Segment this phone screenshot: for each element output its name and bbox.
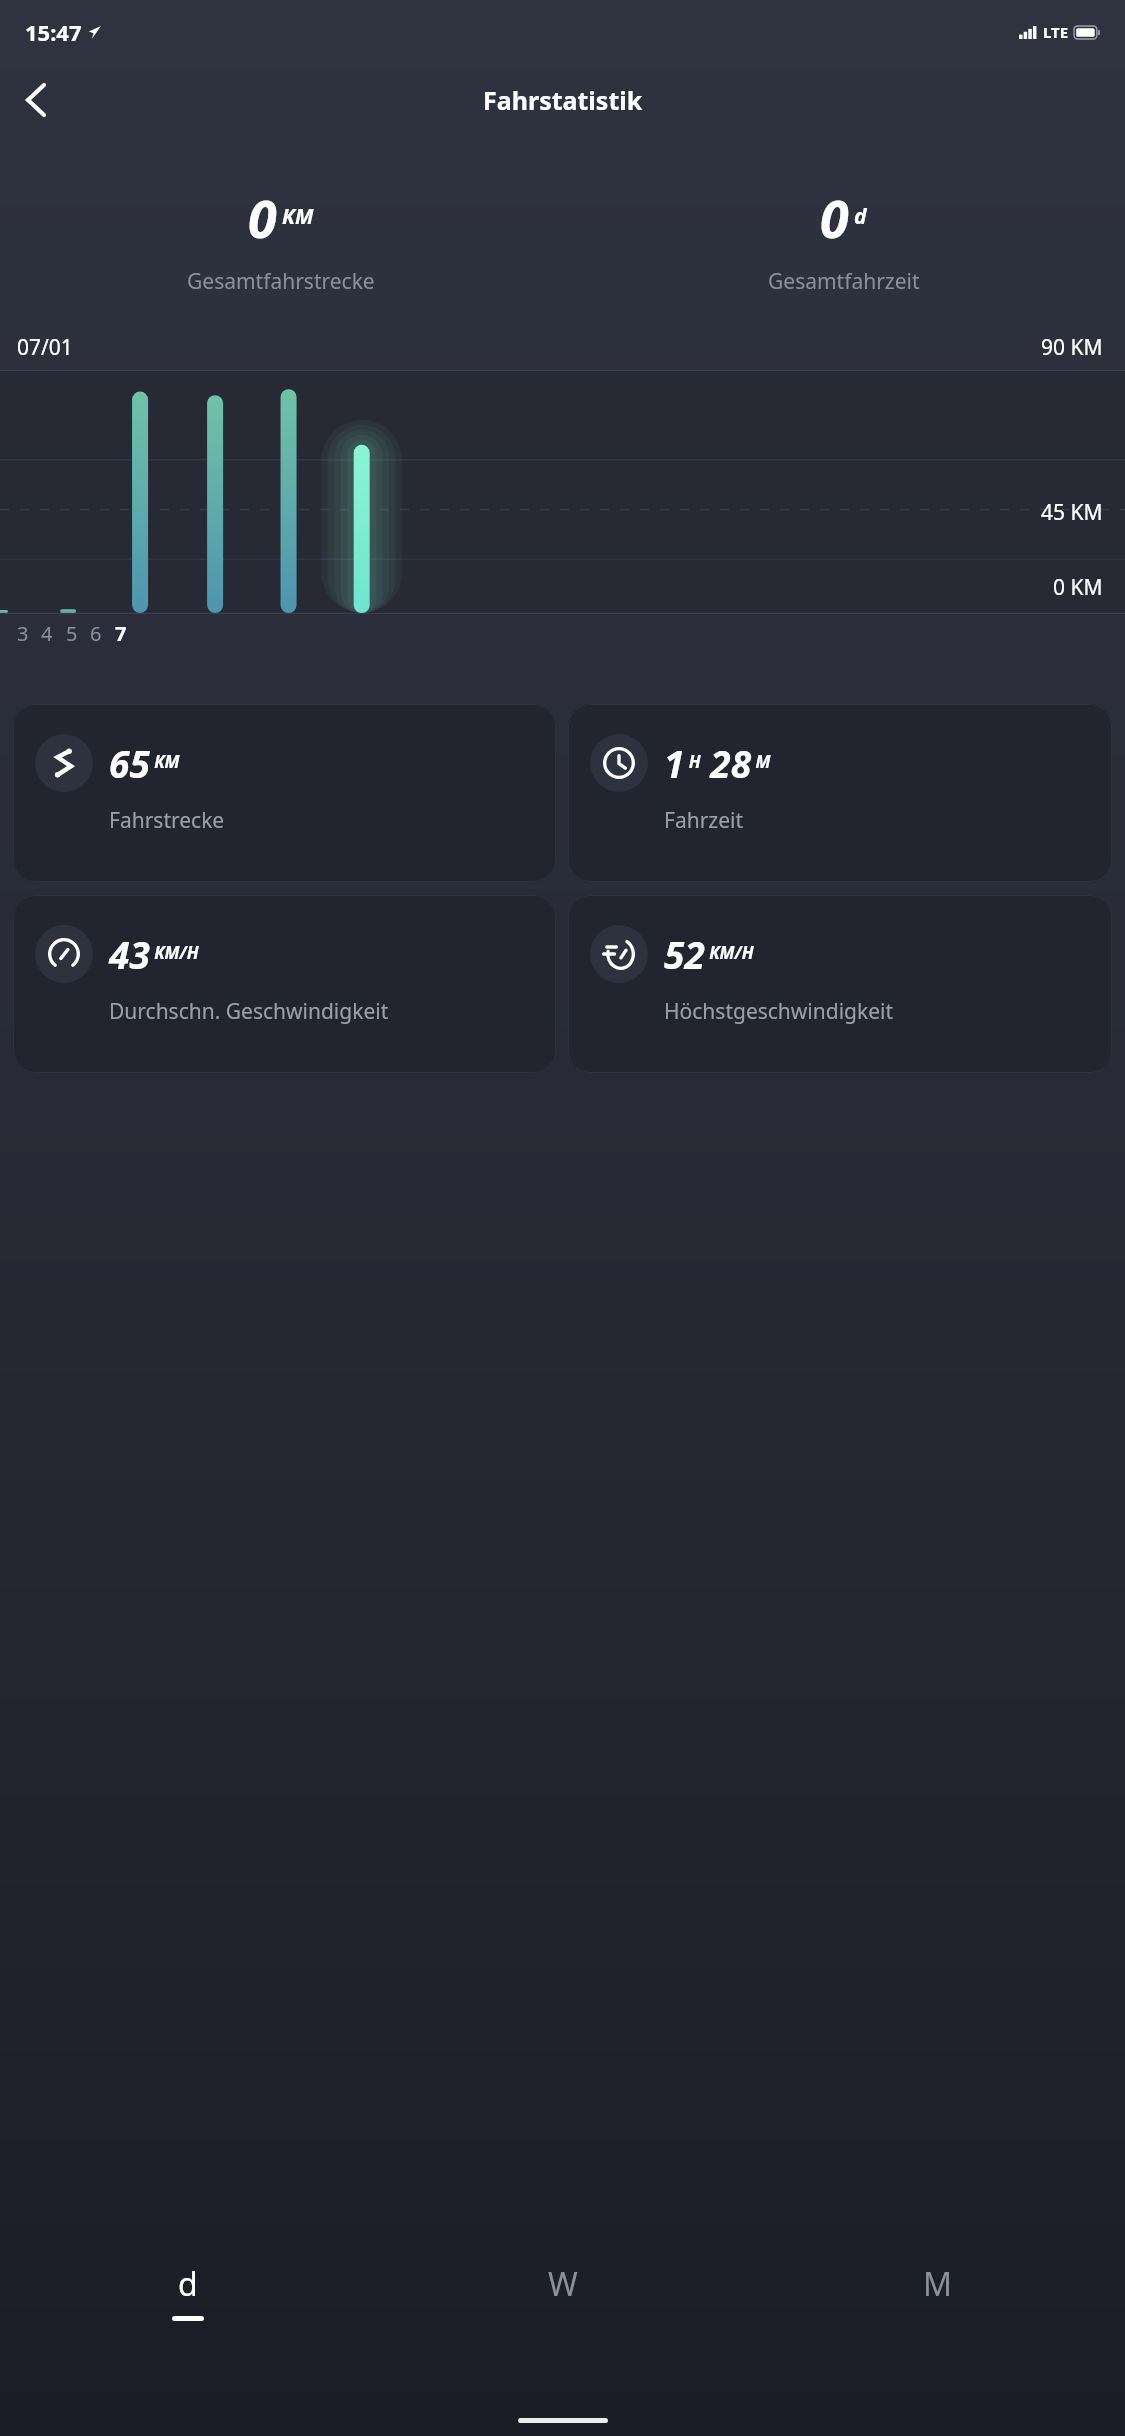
staticText: 0 KM bbox=[248, 182, 314, 253]
staticText: Gesamtfahrstrecke bbox=[187, 267, 375, 296]
staticText: 1 H 28 M bbox=[664, 738, 771, 788]
button[interactable]: 43 KM/H bbox=[13, 895, 556, 1073]
staticText: 52 KM/H bbox=[664, 929, 754, 979]
staticText: Fahrzeit bbox=[664, 806, 744, 835]
staticText: 6 bbox=[90, 620, 102, 647]
button[interactable]: M bbox=[750, 2262, 1125, 2321]
staticText: 5 bbox=[66, 620, 78, 647]
staticText: Fahrstatistik bbox=[483, 83, 643, 117]
staticText: Höchstgeschwindigkeit bbox=[664, 997, 894, 1026]
staticText: 7 bbox=[115, 620, 127, 647]
staticText: 07/01 bbox=[17, 333, 73, 362]
staticText: LTE bbox=[1043, 22, 1069, 42]
button[interactable]: d bbox=[0, 2262, 375, 2321]
staticText: 43 KM/H bbox=[109, 929, 199, 979]
staticText: 4 bbox=[41, 620, 53, 647]
staticText: d bbox=[178, 2262, 198, 2306]
button[interactable]: 65 KM bbox=[13, 704, 556, 882]
staticText: 15:47 bbox=[25, 17, 82, 47]
staticText: 90 KM bbox=[1041, 333, 1103, 362]
staticText: 45 KM bbox=[1041, 498, 1103, 527]
staticText: 0 d bbox=[820, 182, 867, 253]
staticText: Fahrstrecke bbox=[109, 806, 225, 835]
staticText: W bbox=[548, 2262, 578, 2306]
staticText: 3 bbox=[17, 620, 29, 647]
staticText: M bbox=[923, 2262, 953, 2306]
staticText: Durchschn. Geschwindigkeit bbox=[109, 997, 389, 1026]
button[interactable]: 1 H 28 M bbox=[568, 704, 1112, 882]
staticText: 0 KM bbox=[1053, 573, 1103, 602]
button[interactable]: W bbox=[375, 2262, 750, 2321]
staticText: Gesamtfahrzeit bbox=[768, 267, 920, 296]
button[interactable]: Back bbox=[8, 72, 64, 128]
staticText: 65 KM bbox=[109, 738, 180, 788]
button[interactable]: 52 KM/H bbox=[568, 895, 1112, 1073]
